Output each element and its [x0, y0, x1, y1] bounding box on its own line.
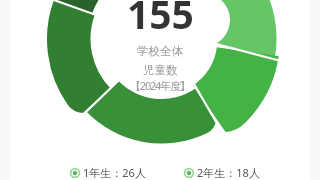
staticText: 2年生：18人 — [197, 165, 260, 180]
staticText: 児童数 — [143, 63, 178, 77]
staticText: 155 — [127, 0, 194, 40]
button[interactable]: 2年生：18人 — [184, 165, 260, 180]
staticText: 学校全体 — [137, 44, 183, 58]
staticText: 1年生：26人 — [83, 165, 146, 180]
staticText: 【2024年度】 — [130, 78, 190, 93]
button[interactable]: 1年生：26人 — [70, 165, 146, 180]
